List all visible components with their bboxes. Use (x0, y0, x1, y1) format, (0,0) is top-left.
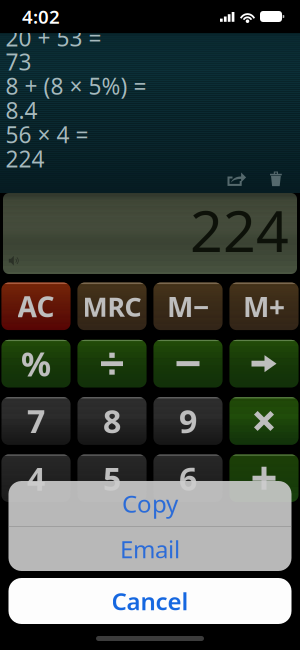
button[interactable]: 7 (1, 397, 70, 445)
button[interactable]: Minus (153, 340, 222, 387)
button[interactable]: 5 (77, 454, 146, 502)
button[interactable]: Divide (77, 340, 146, 387)
staticText: M+ (243, 288, 285, 325)
button[interactable]: M− (153, 283, 222, 330)
staticText: MRC (82, 289, 141, 324)
button[interactable]: Email (8, 527, 291, 571)
staticText: 20 + 53 = (5, 22, 101, 53)
staticText: 7 (27, 400, 45, 442)
button[interactable]: MRC (77, 283, 146, 330)
staticText: 8 + (8 × 5%) = (5, 71, 146, 101)
staticText: Cancel (111, 585, 188, 617)
staticText: Email (120, 533, 180, 565)
staticText: 224 (5, 143, 44, 174)
button[interactable]: 9 (153, 397, 222, 445)
button[interactable]: M+ (229, 283, 298, 330)
button[interactable]: Plus (229, 454, 298, 502)
staticText: 5 (103, 457, 121, 499)
button[interactable]: Multiply (229, 397, 298, 445)
button[interactable]: % (1, 340, 70, 387)
button[interactable]: AC (1, 283, 70, 330)
button[interactable]: Backspace (229, 340, 298, 387)
button[interactable]: 8 (77, 397, 146, 445)
staticText: 4:02 (22, 4, 60, 29)
staticText: % (21, 341, 51, 386)
button[interactable]: Clear history (264, 168, 288, 190)
staticText: 8.4 (5, 95, 37, 125)
staticText: 73 (5, 47, 31, 77)
staticText: 8 (103, 400, 121, 442)
staticText: 6 (179, 457, 197, 499)
staticText: 56 × 4 = (5, 119, 88, 149)
staticText: M− (167, 288, 209, 325)
button[interactable]: 4 (1, 454, 70, 502)
staticText: 4 (27, 457, 45, 499)
staticText: 224 (190, 192, 289, 268)
staticText: AC (17, 288, 54, 325)
button[interactable]: Copy (8, 481, 291, 526)
button[interactable]: Cancel (8, 578, 291, 624)
button[interactable]: 6 (153, 454, 222, 502)
staticText: 9 (179, 400, 197, 442)
staticText: Copy (122, 488, 178, 519)
button[interactable]: Share (222, 168, 252, 190)
